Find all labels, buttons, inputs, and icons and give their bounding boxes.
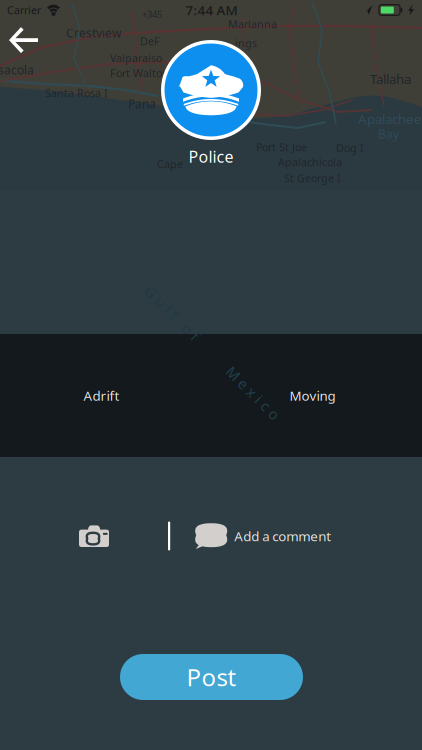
staticText: Police [188,146,233,167]
staticText: M e x i c o [218,383,287,403]
staticText: 7:44 AM [185,1,237,19]
staticText: Pana [128,96,156,112]
staticText: ings [235,36,257,50]
button[interactable]: Moving [203,334,422,457]
staticText: Marianna [228,17,277,31]
staticText: Fort Walton [110,66,169,80]
button[interactable]: Add a comment [168,512,418,560]
staticText: Cape [157,157,183,171]
staticText: Post [186,661,236,693]
staticText: Apalachee [358,110,422,128]
staticText: Valparaiso [110,51,162,65]
staticText: Port St Joe [256,140,307,154]
button[interactable]: Adrift [0,334,203,457]
staticText: +345 [142,8,162,20]
staticText: Adrift [83,387,119,404]
staticText: Apalachicola [278,155,342,169]
staticText: St George I [284,171,341,185]
staticText: Santa Rosa I [45,86,108,100]
staticText: Crestview [66,25,121,41]
staticText: Carrier [7,3,41,17]
button[interactable]: Attach photo [63,512,125,560]
staticText: Add a comment [234,527,331,545]
staticText: sacola [0,62,34,78]
staticText: DeF [140,34,160,48]
button[interactable]: Back [0,18,47,62]
button[interactable]: Post [120,654,303,700]
staticText: Tallaha [370,70,411,88]
staticText: Bay [378,126,399,142]
staticText: Moving [289,387,335,404]
staticText: Dog I [336,141,364,155]
